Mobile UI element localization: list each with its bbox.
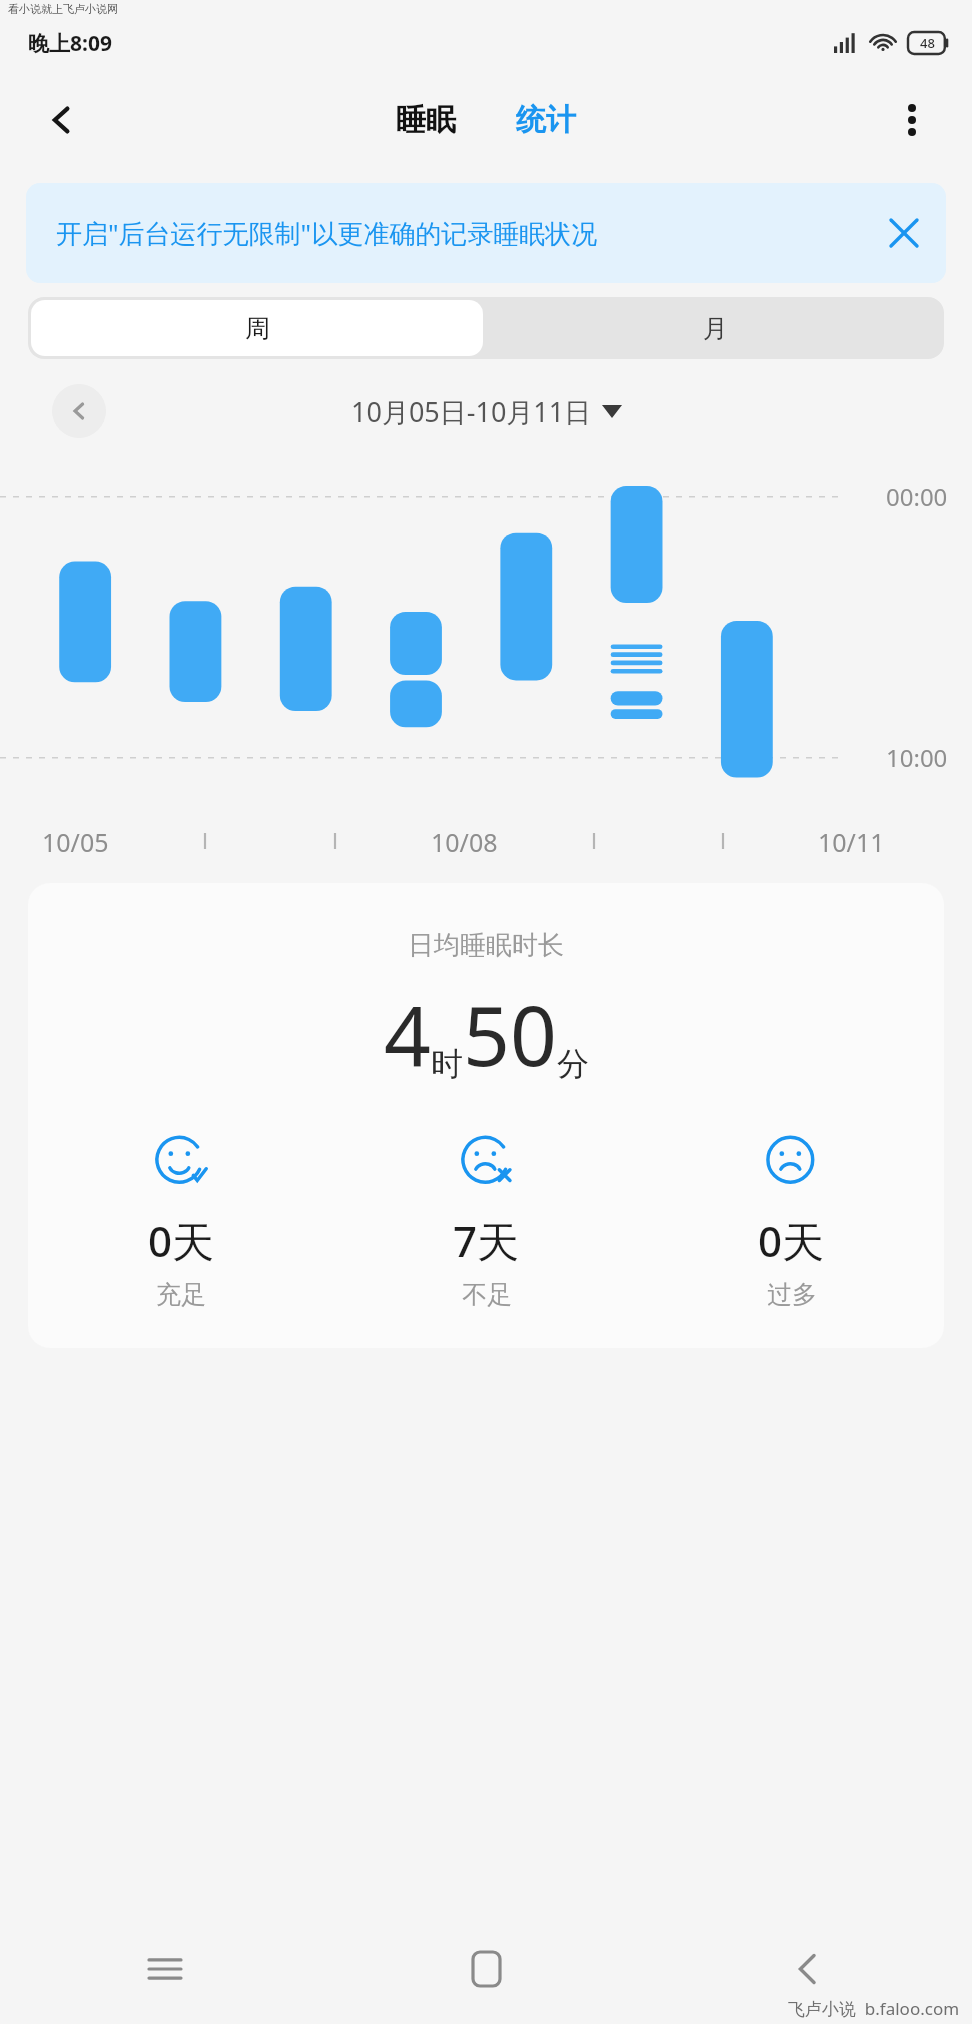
staticText: 7天 xyxy=(453,1212,520,1269)
staticText: 10:00 xyxy=(886,741,948,774)
staticText: 0天 xyxy=(148,1212,215,1269)
staticText: 分 xyxy=(557,1044,589,1084)
staticText: 过多 xyxy=(767,1279,817,1310)
staticText: 充足 xyxy=(156,1279,206,1310)
staticText: 飞卢小说 b.faloo.com xyxy=(788,1997,960,2020)
button[interactable]: More options xyxy=(886,94,938,146)
staticText: 4 xyxy=(384,978,431,1090)
button[interactable]: 日均睡眠时长 xyxy=(28,883,944,1348)
button[interactable]: Home xyxy=(451,1934,521,2004)
staticText: 10/11 xyxy=(818,825,885,859)
staticText: 10月05日-10月11日 xyxy=(351,393,592,430)
button[interactable]: Back xyxy=(772,1934,842,2004)
button[interactable]: 开启"后台运行无限制"以更准确的记录睡眠状况 xyxy=(26,183,946,283)
staticText: 48 xyxy=(920,34,935,52)
button[interactable]: 0天 xyxy=(28,1134,334,1310)
button[interactable]: 7天 xyxy=(334,1134,639,1310)
staticText: 睡眠 xyxy=(396,101,456,139)
staticText: 月 xyxy=(703,313,728,344)
staticText: 日均睡眠时长 xyxy=(408,929,564,962)
staticText: 开启"后台运行无限制"以更准确的记录睡眠状况 xyxy=(56,215,870,251)
button[interactable]: 0天 xyxy=(639,1134,944,1310)
staticText: 晚上8:09 xyxy=(28,29,112,58)
staticText: 看小说就上飞卢小说网 xyxy=(8,2,118,16)
staticText: 10/08 xyxy=(431,825,498,859)
staticText: 0天 xyxy=(758,1212,825,1269)
staticText: 统计 xyxy=(516,101,576,139)
staticText: 不足 xyxy=(462,1279,512,1310)
staticText: 10/05 xyxy=(42,825,109,859)
button[interactable]: 周 xyxy=(31,300,483,356)
button[interactable]: 月 xyxy=(486,297,944,359)
button[interactable]: 10月05日-10月11日 xyxy=(341,385,632,438)
button[interactable]: Recent apps xyxy=(130,1934,200,2004)
button[interactable]: Back xyxy=(36,94,88,146)
staticText: 50 xyxy=(463,978,557,1090)
staticText: 周 xyxy=(245,313,270,344)
staticText: 00:00 xyxy=(886,480,948,513)
button[interactable]: 睡眠 xyxy=(390,95,462,145)
button[interactable]: Previous week xyxy=(52,384,106,438)
staticText: 时 xyxy=(431,1044,463,1084)
button[interactable]: 统计 xyxy=(510,95,582,145)
button[interactable]: Close xyxy=(880,209,928,257)
